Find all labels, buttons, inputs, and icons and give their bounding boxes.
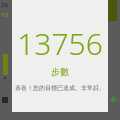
staticText: 28: [1, 1, 8, 9]
staticText: 恭喜！您的目標已達成。非常好。: [15, 84, 105, 92]
staticText: 步數: [51, 66, 69, 77]
button[interactable]: Add: [110, 96, 117, 103]
staticText: 13: [1, 11, 8, 19]
staticText: 13756: [17, 23, 103, 64]
button[interactable]: 13756: [12, 0, 108, 112]
